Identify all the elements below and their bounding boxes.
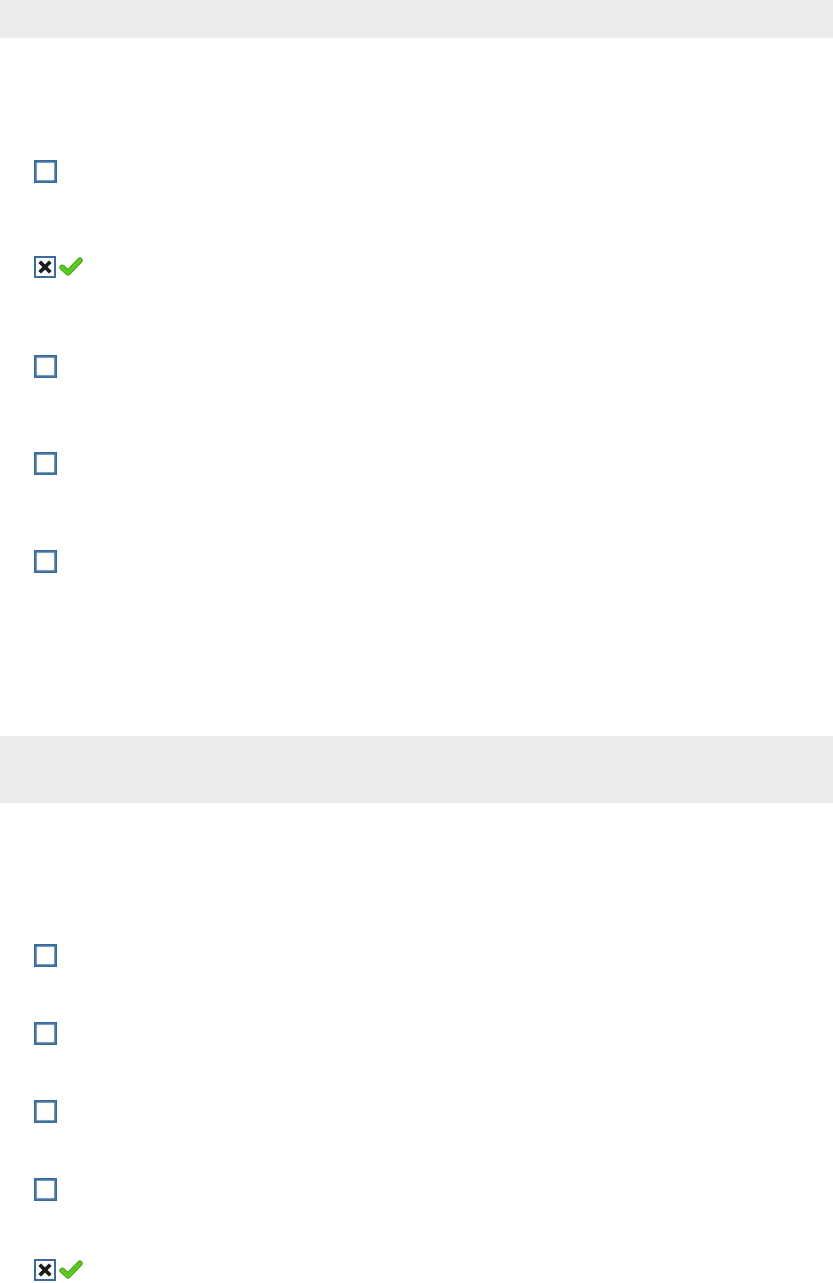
button[interactable]: Option 4 <box>34 550 57 573</box>
button[interactable]: Missing image <box>34 256 56 278</box>
button[interactable]: Option 5 <box>34 944 57 967</box>
button[interactable]: Option 8 <box>34 1178 57 1201</box>
button[interactable]: Missing image <box>34 1259 56 1281</box>
button[interactable]: Option 6 <box>34 1022 57 1045</box>
button[interactable]: Option 2 <box>34 355 57 378</box>
button[interactable]: Option 3 <box>34 452 57 475</box>
button[interactable]: Verified <box>60 1259 82 1281</box>
button[interactable]: Option 1 <box>34 160 57 183</box>
button[interactable]: Verified <box>60 256 82 278</box>
button[interactable]: Option 7 <box>34 1100 57 1123</box>
